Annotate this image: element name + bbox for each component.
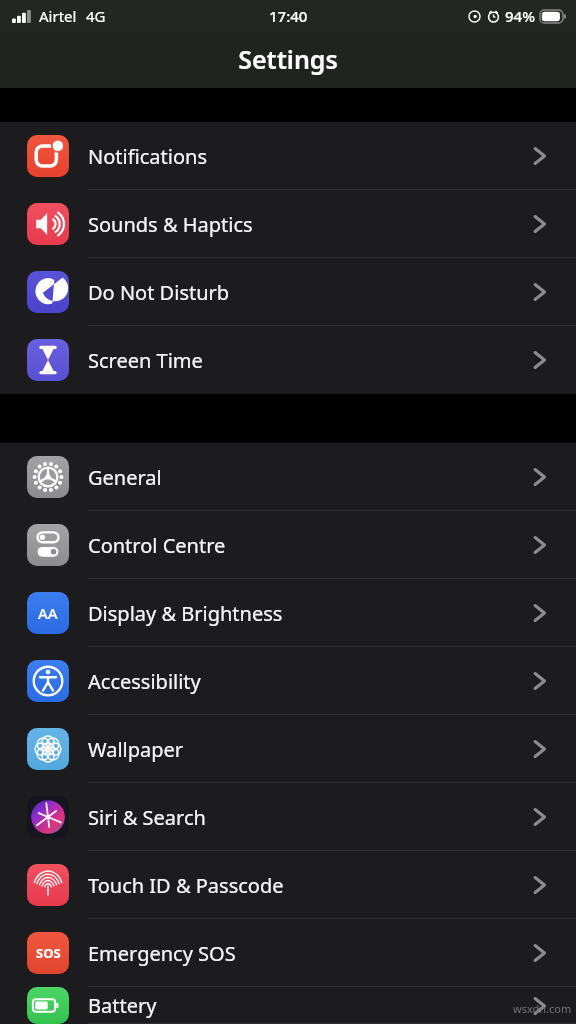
staticText: Accessibility <box>88 668 533 695</box>
staticText: Wallpaper <box>88 736 533 763</box>
button[interactable]: Do Not Disturb <box>0 258 576 326</box>
staticText: Settings <box>238 42 338 76</box>
staticText: Touch ID & Passcode <box>88 872 533 899</box>
staticText: Sounds & Haptics <box>88 211 533 238</box>
button[interactable]: AA <box>0 579 576 647</box>
staticText: Notifications <box>88 143 533 170</box>
button[interactable]: Control Centre <box>0 511 576 579</box>
button[interactable]: Screen Time <box>0 326 576 394</box>
button[interactable]: Sounds & Haptics <box>0 190 576 258</box>
staticText: General <box>88 464 533 491</box>
staticText: Screen Time <box>88 347 533 374</box>
staticText: 4G <box>86 6 106 26</box>
button[interactable]: Siri & Search <box>0 783 576 851</box>
staticText: SOS <box>36 944 61 962</box>
button[interactable]: Notifications <box>0 122 576 190</box>
button[interactable]: Touch ID & Passcode <box>0 851 576 919</box>
button[interactable]: Wallpaper <box>0 715 576 783</box>
staticText: Emergency SOS <box>88 940 533 967</box>
staticText: Do Not Disturb <box>88 279 533 306</box>
staticText: Display & Brightness <box>88 600 533 627</box>
button[interactable]: General <box>0 443 576 511</box>
button[interactable]: Battery <box>0 987 576 1024</box>
staticText: Battery <box>88 992 533 1019</box>
staticText: Control Centre <box>88 532 533 559</box>
staticText: 94% <box>505 6 535 26</box>
staticText: 17:40 <box>269 6 308 26</box>
staticText: Airtel <box>39 6 77 26</box>
button[interactable]: SOS <box>0 919 576 987</box>
staticText: Siri & Search <box>88 804 533 831</box>
button[interactable]: Accessibility <box>0 647 576 715</box>
staticText: wsxdn.com <box>513 1001 572 1016</box>
staticText: AA <box>38 603 58 623</box>
